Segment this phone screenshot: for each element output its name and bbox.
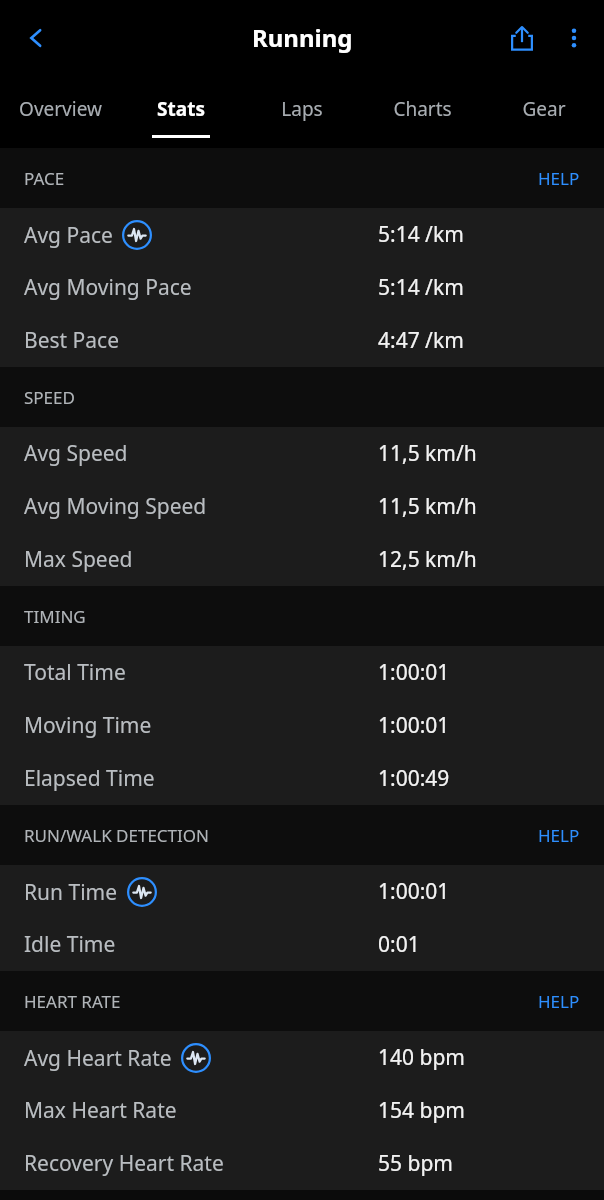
button[interactable]: Avg Moving Pace: [0, 261, 604, 314]
staticText: HEART RATE: [24, 990, 121, 1013]
staticText: 1:00:01: [378, 711, 450, 740]
button[interactable]: Overview: [0, 75, 120, 148]
button[interactable]: Total Time: [0, 646, 604, 699]
button[interactable]: Stats: [120, 75, 241, 148]
button[interactable]: Recovery Heart Rate: [0, 1137, 604, 1190]
button[interactable]: Moving Time: [0, 699, 604, 752]
staticText: PACE: [24, 167, 65, 190]
staticText: 1:00:01: [378, 658, 450, 687]
button[interactable]: Best Pace: [0, 314, 604, 367]
staticText: Run Time: [24, 878, 118, 907]
staticText: Max Heart Rate: [24, 1096, 177, 1125]
staticText: Avg Heart Rate: [24, 1044, 172, 1073]
staticText: 140 bpm: [378, 1043, 465, 1072]
staticText: Avg Speed: [24, 439, 128, 468]
staticText: 1:00:01: [378, 877, 450, 906]
staticText: 1:00:49: [378, 764, 450, 793]
button[interactable]: Back: [8, 10, 64, 66]
staticText: Best Pace: [24, 326, 120, 355]
button[interactable]: Share: [496, 12, 548, 64]
button[interactable]: Max Heart Rate: [0, 1084, 604, 1137]
staticText: 5:14 /km: [378, 220, 464, 249]
button[interactable]: Elapsed Time: [0, 752, 604, 805]
staticText: Total Time: [24, 658, 126, 687]
staticText: Stats: [157, 96, 205, 122]
button[interactable]: Laps: [241, 75, 362, 148]
staticText: Running: [252, 21, 353, 54]
staticText: TIMING: [24, 605, 86, 628]
button[interactable]: Avg Heart Rate: [0, 1031, 604, 1084]
button[interactable]: Avg Moving Speed: [0, 480, 604, 533]
button[interactable]: HELP: [514, 148, 604, 208]
staticText: Moving Time: [24, 711, 152, 740]
button[interactable]: Gear: [483, 75, 604, 148]
button[interactable]: Idle Time: [0, 918, 604, 971]
staticText: 154 bpm: [378, 1096, 465, 1125]
staticText: Max Speed: [24, 545, 133, 574]
staticText: 55 bpm: [378, 1149, 453, 1178]
button[interactable]: Max Speed: [0, 533, 604, 586]
staticText: Idle Time: [24, 930, 116, 959]
staticText: Avg Moving Pace: [24, 273, 192, 302]
button[interactable]: Avg Speed: [0, 427, 604, 480]
staticText: Overview: [19, 96, 102, 122]
staticText: Laps: [281, 96, 323, 122]
staticText: 11,5 km/h: [378, 492, 477, 521]
staticText: Recovery Heart Rate: [24, 1149, 224, 1178]
staticText: Avg Pace: [24, 221, 113, 250]
button[interactable]: Run Time: [0, 865, 604, 918]
staticText: Avg Moving Speed: [24, 492, 207, 521]
staticText: HELP: [538, 824, 580, 847]
staticText: 0:01: [378, 930, 420, 959]
staticText: Charts: [393, 96, 452, 122]
staticText: Elapsed Time: [24, 764, 155, 793]
staticText: 5:14 /km: [378, 273, 464, 302]
staticText: HELP: [538, 990, 580, 1013]
button[interactable]: HELP: [514, 971, 604, 1031]
staticText: 12,5 km/h: [378, 545, 477, 574]
staticText: Gear: [522, 96, 566, 122]
staticText: SPEED: [24, 386, 75, 409]
button[interactable]: HELP: [514, 805, 604, 865]
button[interactable]: More options: [548, 12, 600, 64]
button[interactable]: Avg Pace: [0, 208, 604, 261]
staticText: 11,5 km/h: [378, 439, 477, 468]
staticText: HELP: [538, 167, 580, 190]
button[interactable]: Charts: [362, 75, 483, 148]
staticText: RUN/WALK DETECTION: [24, 824, 210, 847]
staticText: 4:47 /km: [378, 326, 464, 355]
